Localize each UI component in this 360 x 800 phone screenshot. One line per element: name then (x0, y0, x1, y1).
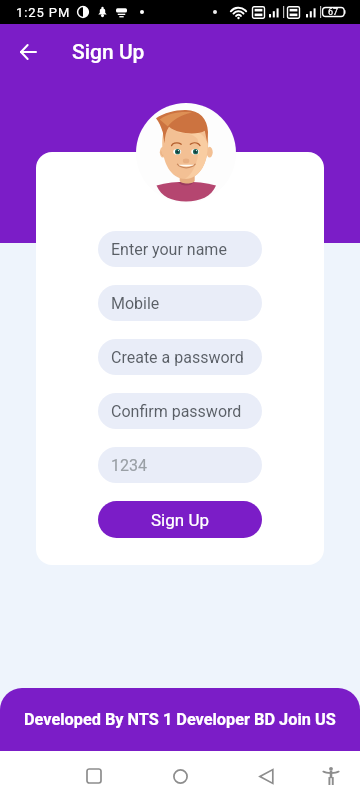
staticText: Mobile (111, 294, 160, 313)
button[interactable]: Create a password (98, 339, 262, 375)
staticText: Create a password (111, 348, 244, 367)
button[interactable]: 1234 (98, 447, 262, 483)
staticText: Confirm password (111, 402, 242, 421)
staticText: Sign Up (151, 510, 209, 530)
button[interactable]: Enter your name (98, 231, 262, 267)
staticText: 1:25 PM (16, 5, 71, 20)
button[interactable]: Mobile (98, 285, 262, 321)
button[interactable]: Recent apps (74, 756, 114, 796)
staticText: Enter your name (111, 240, 227, 259)
button[interactable]: Confirm password (98, 393, 262, 429)
staticText: 1234 (111, 456, 147, 475)
staticText: 67 (328, 7, 339, 18)
button[interactable]: Developed By NTS 1 Developer BD Join US (0, 688, 360, 751)
button[interactable]: Home (160, 756, 200, 796)
staticText: Developed By NTS 1 Developer BD Join US (24, 710, 336, 729)
button[interactable]: Back (246, 756, 286, 796)
button[interactable]: Accessibility (311, 756, 351, 796)
button[interactable]: Sign Up (98, 501, 262, 538)
button[interactable]: Back (12, 36, 44, 68)
staticText: Sign Up (72, 40, 145, 65)
